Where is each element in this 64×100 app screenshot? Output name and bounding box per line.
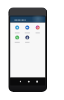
button[interactable]: Share sheet on phone bbox=[0, 0, 64, 100]
